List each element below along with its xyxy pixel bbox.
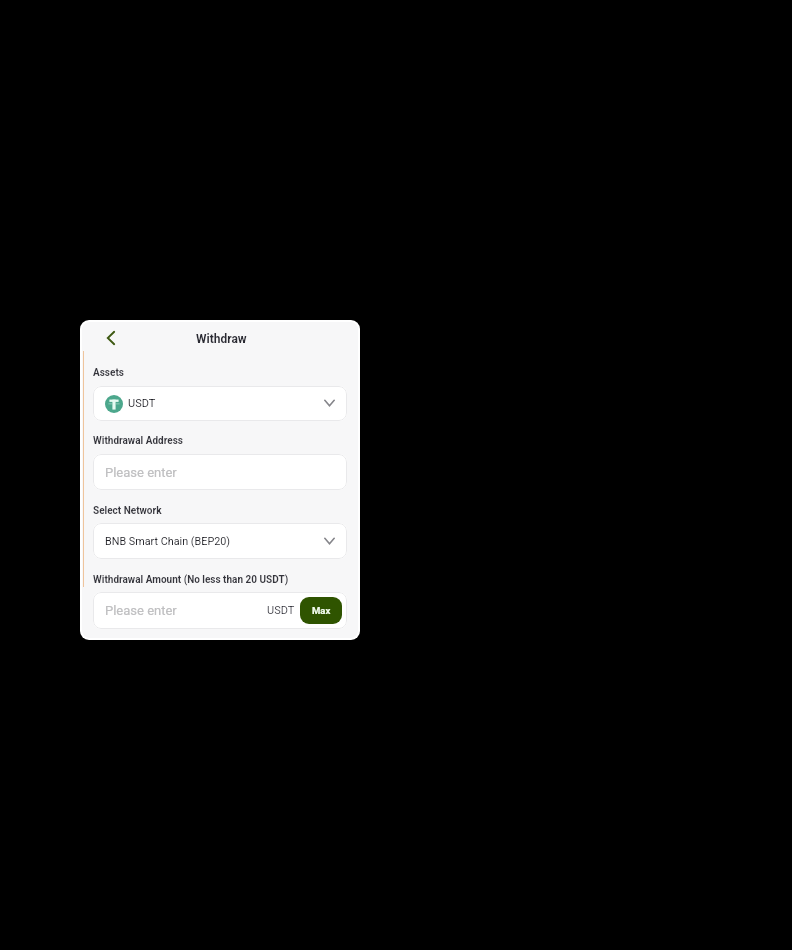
button[interactable]: USDT bbox=[93, 386, 347, 421]
button[interactable]: Please enter bbox=[93, 454, 347, 490]
staticText: BNB Smart Chain (BEP20) bbox=[105, 535, 231, 548]
staticText: Max bbox=[312, 605, 331, 616]
button[interactable]: Max bbox=[300, 597, 342, 624]
staticText: Select Network bbox=[93, 505, 162, 517]
button[interactable]: Back bbox=[99, 326, 123, 350]
staticText: Withdraw bbox=[196, 332, 247, 346]
staticText: Assets bbox=[93, 367, 124, 379]
staticText: USDT bbox=[128, 397, 156, 410]
staticText: USDT bbox=[267, 604, 295, 617]
button[interactable]: Please enter bbox=[93, 592, 347, 629]
staticText: Please enter bbox=[105, 465, 177, 480]
button[interactable]: BNB Smart Chain (BEP20) bbox=[93, 523, 347, 559]
staticText: Withdrawal Address bbox=[93, 435, 183, 447]
staticText: Withdrawal Amount (No less than 20 USDT) bbox=[93, 574, 289, 586]
staticText: Please enter bbox=[105, 603, 177, 618]
